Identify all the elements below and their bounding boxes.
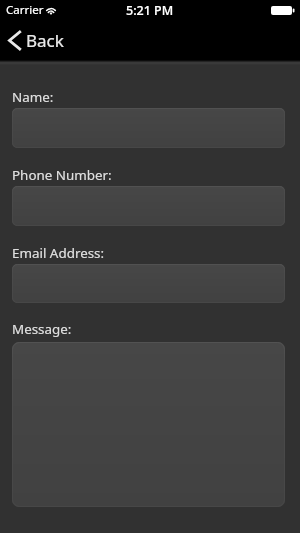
staticText: 5:21 PM (126, 2, 174, 19)
staticText: Name: (12, 88, 54, 106)
staticText: Carrier (6, 2, 44, 18)
other: Wi-Fi signal (45, 5, 57, 15)
staticText: Back (26, 29, 64, 52)
other: Battery full (271, 6, 295, 15)
staticText: Message: (12, 320, 72, 338)
button[interactable]: Back (0, 25, 76, 56)
staticText: Email Address: (12, 244, 105, 262)
staticText: Phone Number: (12, 166, 112, 184)
